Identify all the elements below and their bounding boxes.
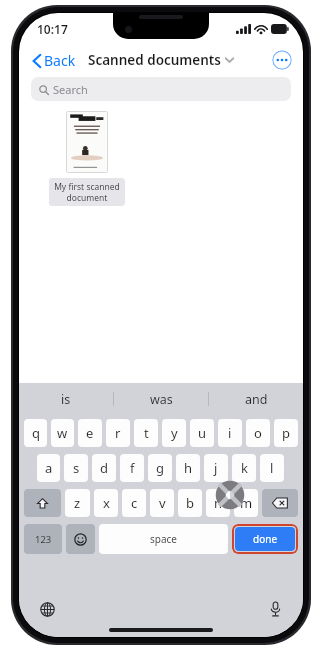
button[interactable]: h [176,454,200,482]
button[interactable]: done [235,527,295,551]
button[interactable]: v [150,489,174,517]
button[interactable]: m [234,489,258,517]
button[interactable]: l [260,454,284,482]
staticText: a [45,459,53,477]
staticText: v [159,494,166,512]
button[interactable]: Search [31,77,291,101]
staticText: l [270,459,274,477]
staticText: r [115,424,121,442]
button[interactable]: 123 [24,524,62,554]
button[interactable]: d [92,454,116,482]
staticText: e [86,424,94,442]
staticText: space [150,532,177,546]
staticText: 123 [35,533,52,546]
staticText: was [150,391,173,408]
button[interactable]: Scanned document thumbnail [66,111,108,173]
staticText: i [228,424,232,442]
staticText: x [103,494,110,512]
staticText: k [241,459,248,477]
button[interactable]: u [190,419,214,447]
button[interactable]: z [65,489,90,517]
staticText: d [100,459,108,477]
staticText: Scanned documents [88,51,221,69]
button[interactable]: j [204,454,228,482]
button[interactable]: is [19,383,113,415]
staticText: and [245,391,268,408]
staticText: 10:17 [37,21,68,37]
button[interactable]: r [106,419,130,447]
staticText: y [171,424,178,442]
staticText: j [214,459,218,477]
button[interactable]: Scanned documents [85,49,237,71]
button[interactable]: y [162,419,186,447]
staticText: z [74,494,81,512]
button[interactable]: t [134,419,158,447]
button[interactable]: p [274,419,298,447]
button[interactable]: n [206,489,230,517]
staticText: h [184,459,193,477]
staticText: s [73,459,80,477]
button[interactable]: More options [272,50,292,70]
button[interactable]: Back [29,48,80,73]
button[interactable]: g [148,454,172,482]
button[interactable]: f [120,454,144,482]
staticText: f [130,459,135,477]
button[interactable]: Emoji [66,524,95,554]
button[interactable]: x [94,489,118,517]
button[interactable]: a [37,454,60,482]
staticText: b [186,494,194,512]
staticText: My first scanned document [52,181,122,203]
button[interactable]: Change keyboard language [37,599,57,619]
staticText: q [32,424,40,442]
button[interactable]: Dictate [265,599,285,619]
button[interactable]: space [99,524,228,554]
button[interactable]: s [64,454,88,482]
staticText: Search [53,82,88,97]
staticText: u [198,424,207,442]
button[interactable]: Shift [24,489,61,517]
button[interactable]: Backspace [262,489,298,517]
button[interactable]: My first scanned document [49,178,125,206]
button[interactable]: c [122,489,146,517]
button[interactable]: b [178,489,202,517]
button[interactable]: o [246,419,270,447]
staticText: w [57,424,68,442]
staticText: done [253,532,278,546]
staticText: n [214,494,223,512]
button[interactable]: w [51,419,74,447]
staticText: p [282,424,290,442]
staticText: m [240,494,253,512]
staticText: c [131,494,138,512]
staticText: o [254,424,262,442]
staticText: Back [44,51,76,70]
button[interactable]: was [114,383,208,415]
button[interactable]: e [78,419,102,447]
button[interactable]: i [218,419,242,447]
button[interactable]: and [209,383,303,415]
staticText: is [61,391,71,408]
staticText: t [144,424,149,442]
button[interactable]: q [24,419,47,447]
staticText: g [156,459,164,477]
button[interactable]: k [232,454,256,482]
